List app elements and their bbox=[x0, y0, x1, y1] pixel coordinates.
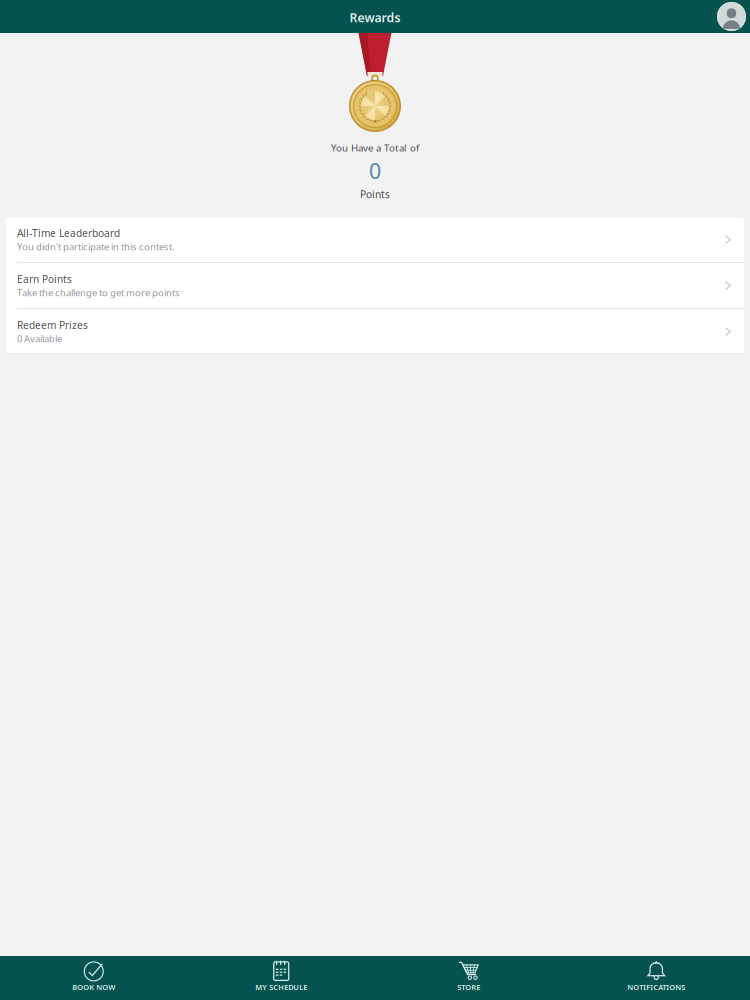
staticText: Redeem Prizes bbox=[17, 318, 88, 332]
button[interactable]: NOTIFICATIONS bbox=[562, 956, 750, 1000]
button[interactable]: Earn Points bbox=[6, 263, 744, 308]
staticText: NOTIFICATIONS bbox=[627, 982, 685, 992]
button[interactable]: Redeem Prizes bbox=[6, 309, 744, 354]
staticText: Rewards bbox=[349, 9, 400, 26]
staticText: 0 bbox=[369, 156, 381, 185]
staticText: You didn't participate in this contest. bbox=[17, 240, 175, 253]
staticText: MY SCHEDULE bbox=[255, 982, 307, 992]
button[interactable]: MY SCHEDULE bbox=[187, 956, 375, 1000]
staticText: BOOK NOW bbox=[72, 982, 115, 992]
staticText: Earn Points bbox=[17, 272, 72, 286]
staticText: You Have a Total of bbox=[331, 141, 419, 154]
button[interactable]: All-Time Leaderboard bbox=[6, 217, 744, 262]
staticText: 0 Available bbox=[17, 332, 62, 345]
staticText: All-Time Leaderboard bbox=[17, 226, 120, 240]
staticText: Points bbox=[360, 187, 390, 201]
staticText: STORE bbox=[457, 982, 480, 992]
button[interactable]: Profile bbox=[717, 2, 746, 31]
button[interactable]: BOOK NOW bbox=[0, 956, 187, 1000]
button[interactable]: STORE bbox=[375, 956, 562, 1000]
staticText: Take the challenge to get more points bbox=[17, 286, 180, 299]
